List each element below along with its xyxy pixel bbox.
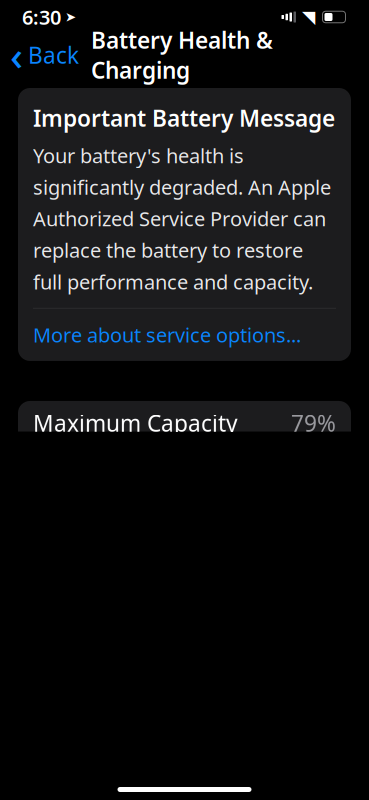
staticText: Your battery's health is significantly d… [33,142,331,295]
staticText: ➤ [65,9,76,24]
staticText: Back [28,40,79,70]
staticText: More about service options... [33,321,301,348]
staticText: Important Battery Message [33,103,335,133]
staticText: Maximum Capacity [33,408,238,438]
staticText: To reduce battery aging, iPhone learns f… [16,775,352,800]
staticText: 6:30 [22,4,61,30]
staticText: ‹ [10,28,23,81]
staticText: Battery Health & Charging [91,25,273,85]
staticText: ◥ [302,7,315,27]
button[interactable]: More about service options... [33,308,336,361]
staticText: 79% [291,408,336,438]
button[interactable]: ‹ [0,35,85,75]
